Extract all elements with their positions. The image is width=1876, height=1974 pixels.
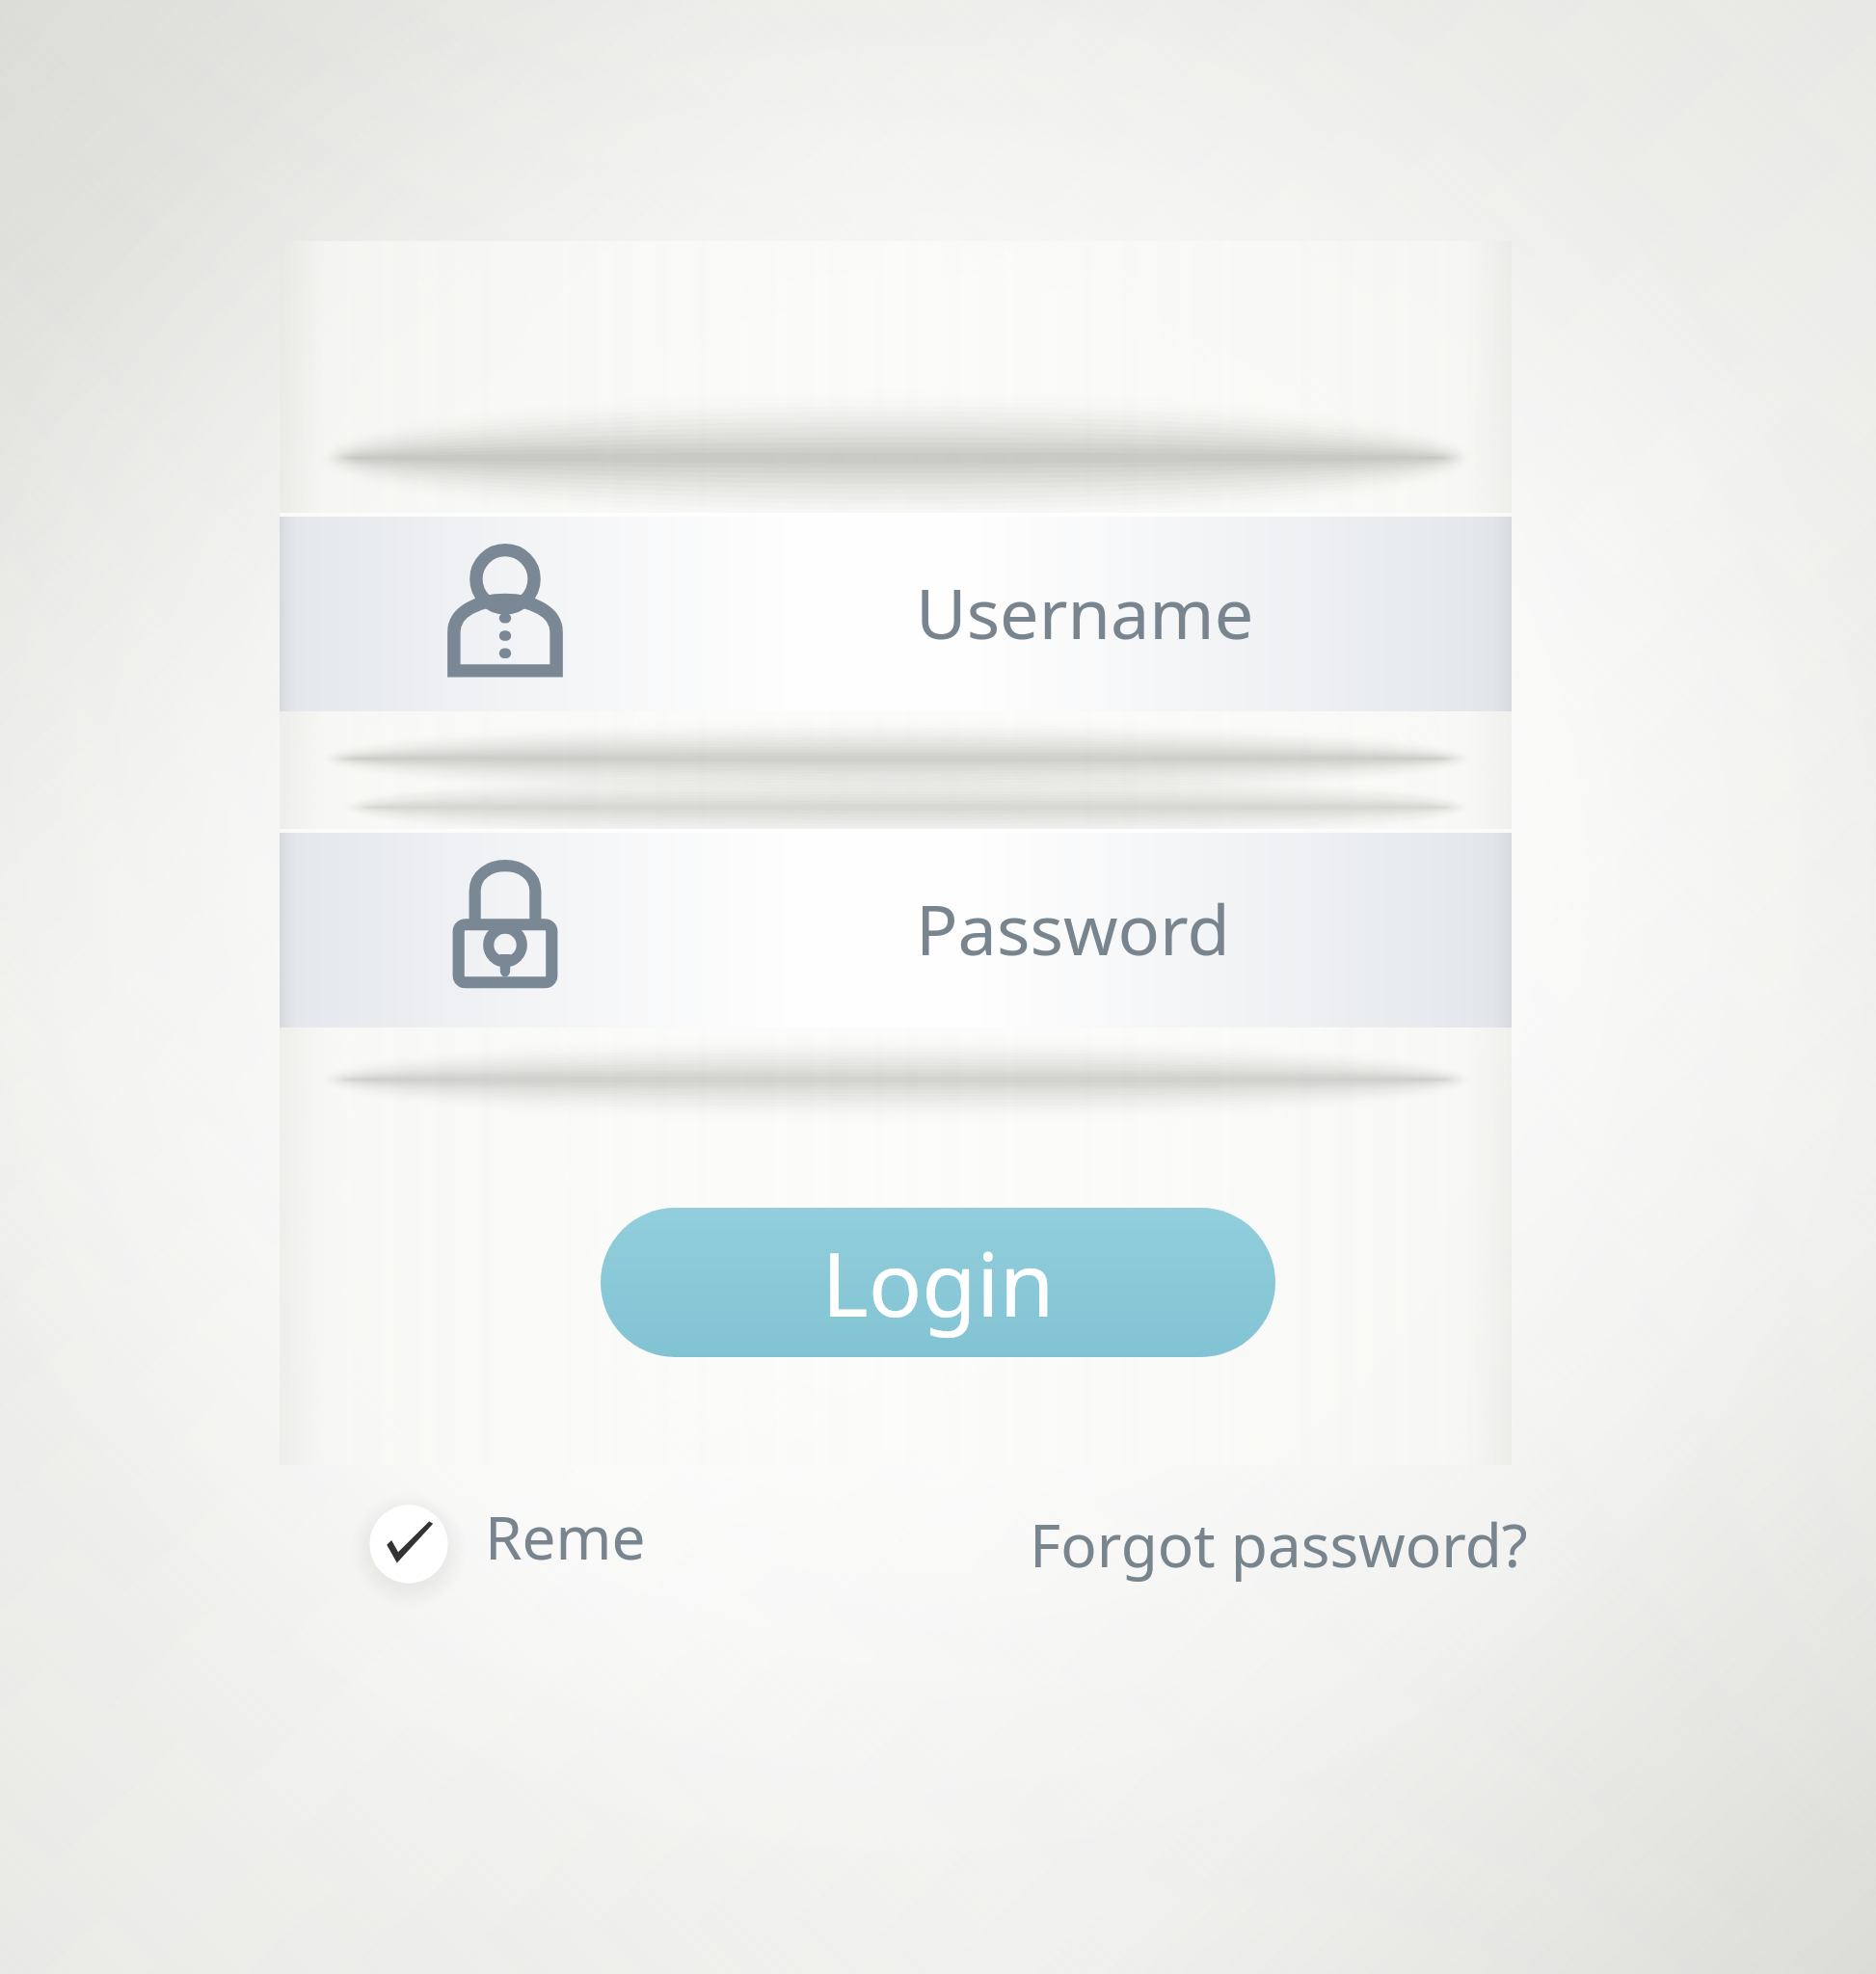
button[interactable]: Forgot password?: [1030, 1496, 1528, 1592]
staticText: Password: [916, 881, 1230, 975]
staticText: Username: [916, 565, 1254, 659]
staticText: Remember me: [485, 1496, 651, 1592]
button[interactable]: Password: [280, 829, 1512, 1027]
other: Remember me checkbox: [362, 1497, 456, 1591]
staticText: Forgot password?: [1030, 1504, 1528, 1585]
other: Password: [443, 861, 567, 996]
button[interactable]: Remember me checkbox: [362, 1496, 651, 1592]
button[interactable]: Login: [601, 1208, 1275, 1357]
other: Username: [443, 545, 567, 680]
staticText: Login: [821, 1222, 1055, 1343]
button[interactable]: Username: [280, 513, 1512, 711]
